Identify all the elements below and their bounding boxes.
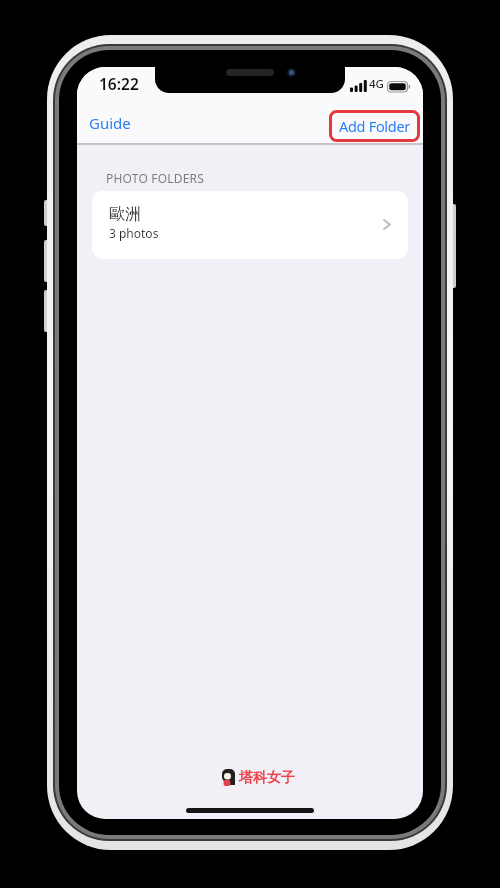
- staticText: PHOTO FOLDERS: [106, 170, 205, 186]
- staticText: 塔科女子: [239, 769, 295, 787]
- staticText: 3 photos: [109, 225, 159, 241]
- button[interactable]: 歐洲: [92, 191, 408, 259]
- staticText: Guide: [89, 113, 131, 133]
- staticText: 歐洲: [109, 204, 141, 224]
- staticText: 4G: [369, 76, 384, 92]
- button[interactable]: Add Folder: [329, 110, 420, 142]
- staticText: Add Folder: [339, 116, 410, 136]
- button[interactable]: Guide: [83, 107, 137, 139]
- staticText: 16:22: [99, 73, 139, 94]
